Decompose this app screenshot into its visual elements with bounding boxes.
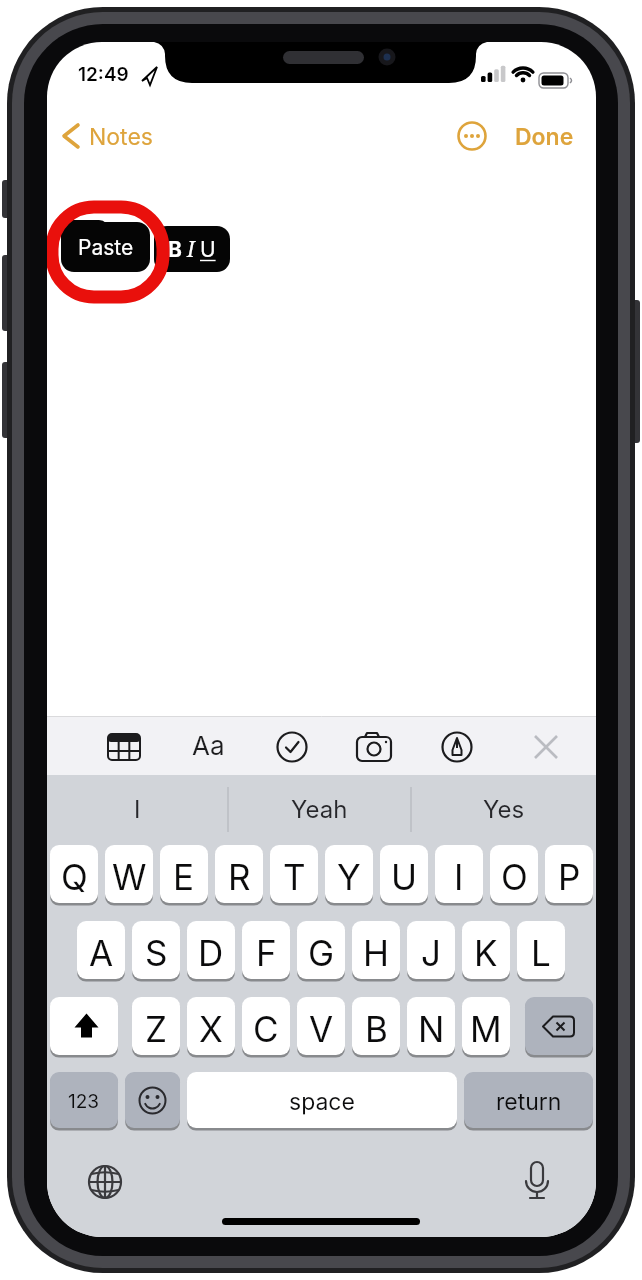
staticText: Q	[61, 856, 88, 898]
staticText: C	[253, 1008, 279, 1050]
button[interactable]	[55, 117, 87, 157]
staticText: U	[200, 237, 216, 262]
staticText: V	[309, 1008, 334, 1050]
button[interactable]: I	[435, 845, 483, 904]
button[interactable]: C	[242, 997, 290, 1056]
button[interactable]: O	[490, 845, 538, 904]
staticText: B	[365, 1008, 388, 1050]
button[interactable]	[445, 117, 499, 157]
staticText: Paste	[78, 235, 134, 260]
button[interactable]: S	[132, 921, 180, 980]
staticText: U	[391, 856, 418, 898]
staticText: E	[173, 856, 195, 898]
button[interactable]: D	[187, 921, 235, 980]
staticText: M	[470, 1008, 502, 1050]
button[interactable]: B	[352, 997, 400, 1056]
button[interactable]: X	[187, 997, 235, 1056]
staticText: X	[199, 1008, 223, 1050]
button[interactable]	[50, 997, 118, 1056]
button[interactable]: K	[462, 921, 510, 980]
staticText: H	[363, 932, 390, 974]
button[interactable]	[180, 716, 236, 774]
button[interactable]: E	[160, 845, 208, 904]
button[interactable]	[96, 716, 152, 774]
staticText: Notes	[89, 123, 153, 151]
staticText: S	[145, 932, 168, 974]
button[interactable]: Yes	[411, 775, 596, 844]
button[interactable]: W	[105, 845, 153, 904]
staticText: Y	[337, 856, 361, 898]
staticText: return	[496, 1088, 562, 1116]
button[interactable]	[264, 716, 320, 774]
staticText: I	[134, 795, 141, 824]
button[interactable]: Paste	[61, 223, 150, 272]
staticText: Aa	[192, 730, 225, 761]
button[interactable]: return	[464, 1072, 593, 1129]
button[interactable]: F	[242, 921, 290, 980]
button[interactable]	[429, 716, 485, 774]
button[interactable]: J	[407, 921, 455, 980]
button[interactable]: V	[297, 997, 345, 1056]
button[interactable]: space	[187, 1072, 457, 1129]
staticText: J	[421, 932, 441, 974]
button[interactable]: N	[407, 997, 455, 1056]
button[interactable]: Y	[325, 845, 373, 904]
staticText: space	[289, 1088, 355, 1116]
staticText: I	[454, 856, 464, 898]
button[interactable]	[509, 1154, 565, 1210]
button[interactable]	[346, 716, 402, 774]
button[interactable]: R	[215, 845, 263, 904]
staticText: W	[112, 856, 147, 898]
button[interactable]: Z	[132, 997, 180, 1056]
staticText: K	[474, 932, 498, 974]
staticText: A	[89, 932, 114, 974]
button[interactable]: T	[270, 845, 318, 904]
button[interactable]: I	[47, 775, 228, 844]
staticText: L	[531, 932, 551, 974]
staticText: Z	[145, 1008, 168, 1050]
button[interactable]: P	[545, 845, 593, 904]
button[interactable]: B	[154, 226, 230, 272]
staticText: D	[198, 932, 224, 974]
button[interactable]: U	[380, 845, 428, 904]
staticText: F	[256, 932, 277, 974]
staticText: N	[418, 1008, 445, 1050]
button[interactable]: G	[297, 921, 345, 980]
staticText: G	[308, 932, 335, 974]
button[interactable]	[77, 1154, 133, 1210]
button[interactable]	[525, 997, 593, 1056]
button[interactable]: L	[517, 921, 565, 980]
staticText: 12:49	[78, 63, 129, 86]
staticText: O	[501, 856, 528, 898]
button[interactable]	[125, 1072, 180, 1129]
button[interactable]: Q	[50, 845, 98, 904]
staticText: Yeah	[291, 795, 348, 824]
button[interactable]: Notes	[87, 117, 155, 157]
button[interactable]: H	[352, 921, 400, 980]
staticText: Yes	[483, 795, 525, 824]
staticText: Done	[515, 123, 574, 151]
staticText: R	[228, 856, 251, 898]
staticText: 123	[68, 1090, 100, 1113]
button[interactable]: M	[462, 997, 510, 1056]
button[interactable]: Done	[505, 117, 583, 157]
button[interactable]	[518, 716, 574, 774]
staticText: P	[558, 856, 581, 898]
button[interactable]: A	[77, 921, 125, 980]
button[interactable]: Yeah	[228, 775, 411, 844]
staticText: T	[283, 856, 306, 898]
staticText: B	[168, 237, 182, 262]
staticText: I	[187, 235, 195, 264]
button[interactable]: 123	[50, 1072, 118, 1129]
